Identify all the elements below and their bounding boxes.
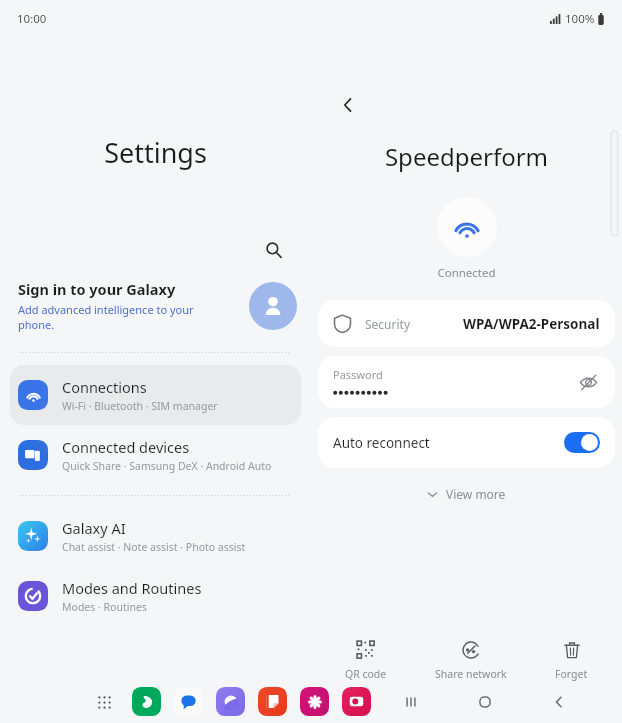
button[interactable]: Back xyxy=(542,685,576,719)
button[interactable]: Internet xyxy=(216,687,245,716)
button[interactable]: Back xyxy=(329,86,367,124)
button[interactable]: Galaxy AI xyxy=(10,506,301,566)
staticText: Forget xyxy=(555,667,588,681)
button[interactable]: Modes and Routines xyxy=(10,566,301,626)
staticText: Wi-Fi · Bluetooth · SIM manager xyxy=(62,399,218,413)
staticText: View more xyxy=(446,486,506,502)
button[interactable]: Security xyxy=(318,300,615,347)
staticText: Connections xyxy=(62,377,147,397)
staticText: Modes · Routines xyxy=(62,600,147,614)
button[interactable]: QR code xyxy=(331,636,401,685)
button[interactable]: Gallery xyxy=(300,687,329,716)
staticText: WPA/WPA2-Personal xyxy=(463,315,600,333)
button[interactable]: Camera xyxy=(342,687,371,716)
staticText: 10:00 xyxy=(17,11,47,27)
staticText: Modes and Routines xyxy=(62,578,202,598)
staticText: Password xyxy=(333,367,383,382)
button[interactable]: Connected devices xyxy=(10,425,301,485)
button[interactable]: Forget xyxy=(541,636,602,685)
button[interactable]: Messages xyxy=(174,687,203,716)
staticText: Share network xyxy=(435,667,507,681)
button[interactable]: Apps xyxy=(90,688,118,716)
staticText: Add advanced intelligence to your phone. xyxy=(18,302,194,332)
staticText: Speedperform xyxy=(311,140,622,173)
button[interactable]: Notes xyxy=(258,687,287,716)
button[interactable]: Password xyxy=(318,356,615,408)
staticText: Security xyxy=(365,316,411,332)
staticText: QR code xyxy=(345,667,387,681)
button[interactable]: Sign in to your Galaxy xyxy=(0,273,311,338)
staticText: 100% xyxy=(565,11,595,27)
staticText: Auto reconnect xyxy=(333,434,430,452)
staticText: Sign in to your Galaxy xyxy=(18,279,176,299)
staticText: Connected xyxy=(311,265,622,281)
staticText: Galaxy AI xyxy=(62,518,126,538)
staticText: Connected devices xyxy=(62,437,190,457)
button[interactable]: View more xyxy=(419,482,514,506)
staticText: Chat assist · Note assist · Photo assist xyxy=(62,540,246,554)
button[interactable]: Auto reconnect xyxy=(318,417,615,468)
button[interactable]: Share network xyxy=(421,636,521,685)
button[interactable] xyxy=(564,432,600,453)
staticText: Quick Share · Samsung DeX · Android Auto xyxy=(62,459,272,473)
staticText: Settings xyxy=(0,134,311,171)
button[interactable]: Phone xyxy=(132,687,161,716)
button[interactable]: Recents xyxy=(394,685,428,719)
button[interactable]: Search xyxy=(257,233,291,267)
button[interactable]: Home xyxy=(468,685,502,719)
button[interactable]: Connections xyxy=(10,365,301,425)
button[interactable]: Show password xyxy=(574,368,602,396)
